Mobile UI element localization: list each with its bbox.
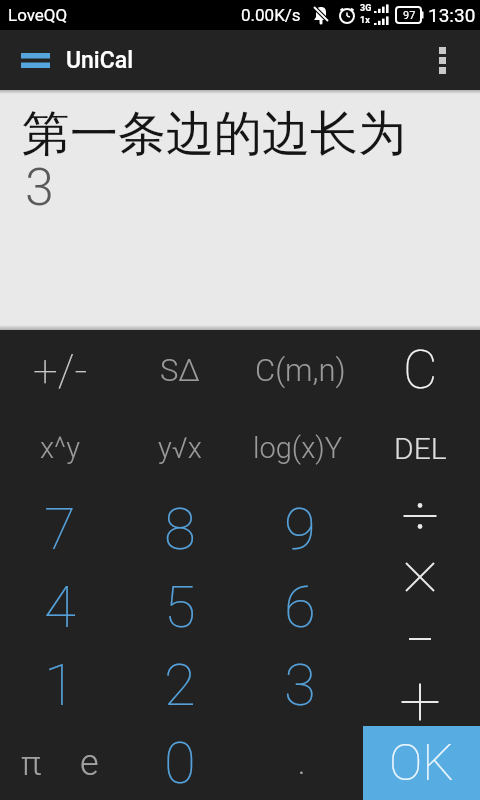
staticText: 6: [284, 573, 316, 641]
staticText: 0.00K/s: [241, 5, 301, 25]
button[interactable]: π: [1, 724, 61, 800]
button[interactable]: 6: [240, 568, 360, 646]
button[interactable]: 1: [0, 646, 120, 724]
staticText: e: [80, 742, 99, 784]
button[interactable]: y√x: [120, 409, 240, 487]
button[interactable]: e: [59, 724, 119, 800]
button[interactable]: 5: [120, 568, 240, 646]
staticText: 1x: [360, 15, 370, 26]
staticText: x^y: [40, 431, 80, 465]
button[interactable]: C: [360, 331, 480, 409]
staticText: UniCal: [66, 47, 134, 74]
button[interactable]: x^y: [0, 409, 120, 487]
staticText: OK: [389, 734, 455, 793]
staticText: 0: [164, 729, 196, 797]
staticText: .: [298, 746, 306, 781]
staticText: 第一条边的边长为: [22, 104, 406, 164]
button[interactable]: 3: [240, 646, 360, 724]
staticText: DEL: [394, 431, 447, 466]
button[interactable]: log(x)Y: [238, 409, 358, 487]
staticText: 97: [403, 9, 416, 22]
button[interactable]: [360, 609, 480, 669]
button[interactable]: [12, 36, 60, 84]
button[interactable]: [422, 36, 462, 84]
button[interactable]: 9: [240, 490, 360, 568]
staticText: 7: [44, 495, 76, 563]
staticText: C: [403, 339, 438, 401]
button[interactable]: [360, 547, 480, 607]
button[interactable]: SΔ: [120, 331, 240, 409]
button[interactable]: 8: [120, 490, 240, 568]
staticText: +/-: [33, 345, 88, 397]
button[interactable]: DEL: [360, 409, 480, 487]
button[interactable]: OK: [363, 726, 480, 800]
staticText: 5: [164, 573, 196, 641]
button[interactable]: C(m,n): [240, 331, 360, 409]
staticText: 3: [284, 651, 316, 719]
staticText: SΔ: [160, 352, 200, 388]
button[interactable]: [360, 486, 480, 546]
staticText: C(m,n): [255, 352, 346, 388]
button[interactable]: +/-: [0, 332, 120, 410]
staticText: y√x: [158, 431, 202, 465]
staticText: 4: [44, 573, 76, 641]
button[interactable]: [360, 672, 480, 732]
button[interactable]: 7: [0, 490, 120, 568]
staticText: 1: [44, 651, 76, 719]
staticText: π: [21, 743, 42, 783]
staticText: 3G: [360, 3, 372, 14]
staticText: LoveQQ: [8, 5, 68, 25]
button[interactable]: 4: [0, 568, 120, 646]
button[interactable]: 0: [120, 724, 240, 800]
staticText: log(x)Y: [253, 431, 343, 465]
staticText: 13:30: [428, 4, 476, 26]
staticText: 3: [25, 157, 54, 218]
staticText: 2: [164, 651, 196, 719]
button[interactable]: 2: [120, 646, 240, 724]
staticText: 8: [164, 495, 196, 563]
staticText: 9: [284, 495, 316, 563]
